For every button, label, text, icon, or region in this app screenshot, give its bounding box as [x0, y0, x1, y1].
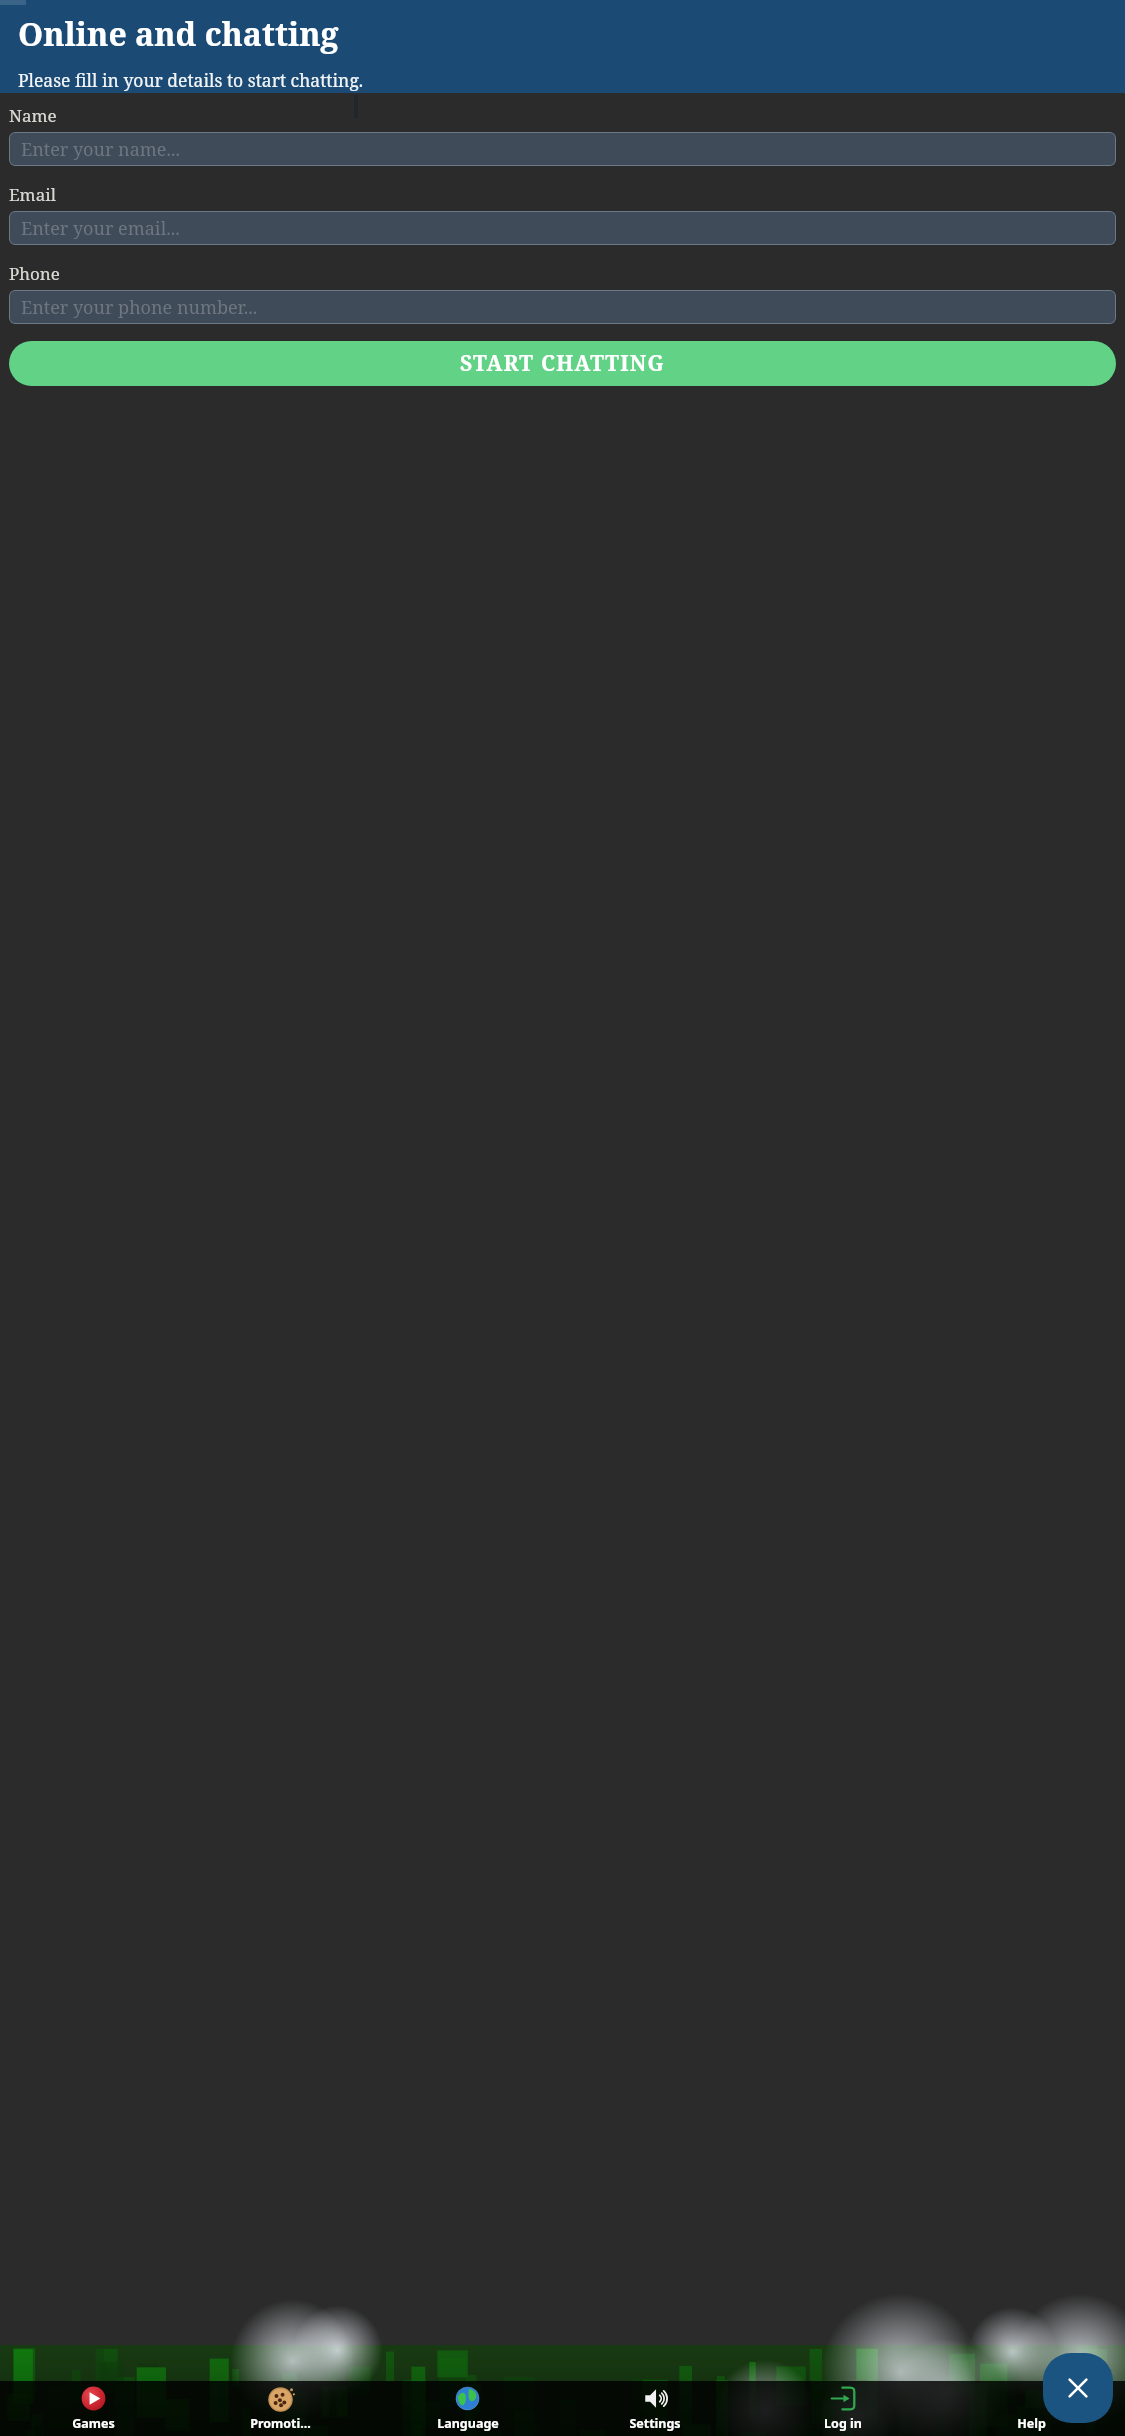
- button[interactable]: Language: [374, 2381, 561, 2436]
- staticText: Promoti...: [250, 2415, 311, 2432]
- button[interactable]: Help: [937, 2381, 1125, 2436]
- button[interactable]: START CHATTING: [9, 341, 1116, 386]
- button[interactable]: Enter your email...: [9, 211, 1116, 245]
- button[interactable]: Settings: [561, 2381, 749, 2436]
- staticText: Games: [72, 2415, 115, 2432]
- staticText: Language: [437, 2415, 499, 2432]
- staticText: Log in: [824, 2415, 862, 2432]
- staticText: Phone: [9, 262, 60, 285]
- staticText: Help: [1017, 2415, 1046, 2432]
- staticText: Enter your name...: [21, 137, 180, 162]
- staticText: Email: [9, 183, 56, 206]
- button[interactable]: Games: [0, 2381, 187, 2436]
- staticText: START CHATTING: [460, 349, 665, 378]
- staticText: Please fill in your details to start cha…: [18, 68, 364, 92]
- button[interactable]: Promoti...: [187, 2381, 374, 2436]
- button[interactable]: Close: [1043, 2353, 1113, 2423]
- staticText: Settings: [629, 2415, 681, 2432]
- staticText: Enter your email...: [21, 216, 180, 241]
- staticText: Enter your phone number...: [21, 295, 258, 320]
- button[interactable]: Log in: [749, 2381, 937, 2436]
- staticText: Name: [9, 104, 57, 127]
- button[interactable]: Enter your phone number...: [9, 290, 1116, 324]
- staticText: Online and chatting: [18, 12, 339, 56]
- button[interactable]: Enter your name...: [9, 132, 1116, 166]
